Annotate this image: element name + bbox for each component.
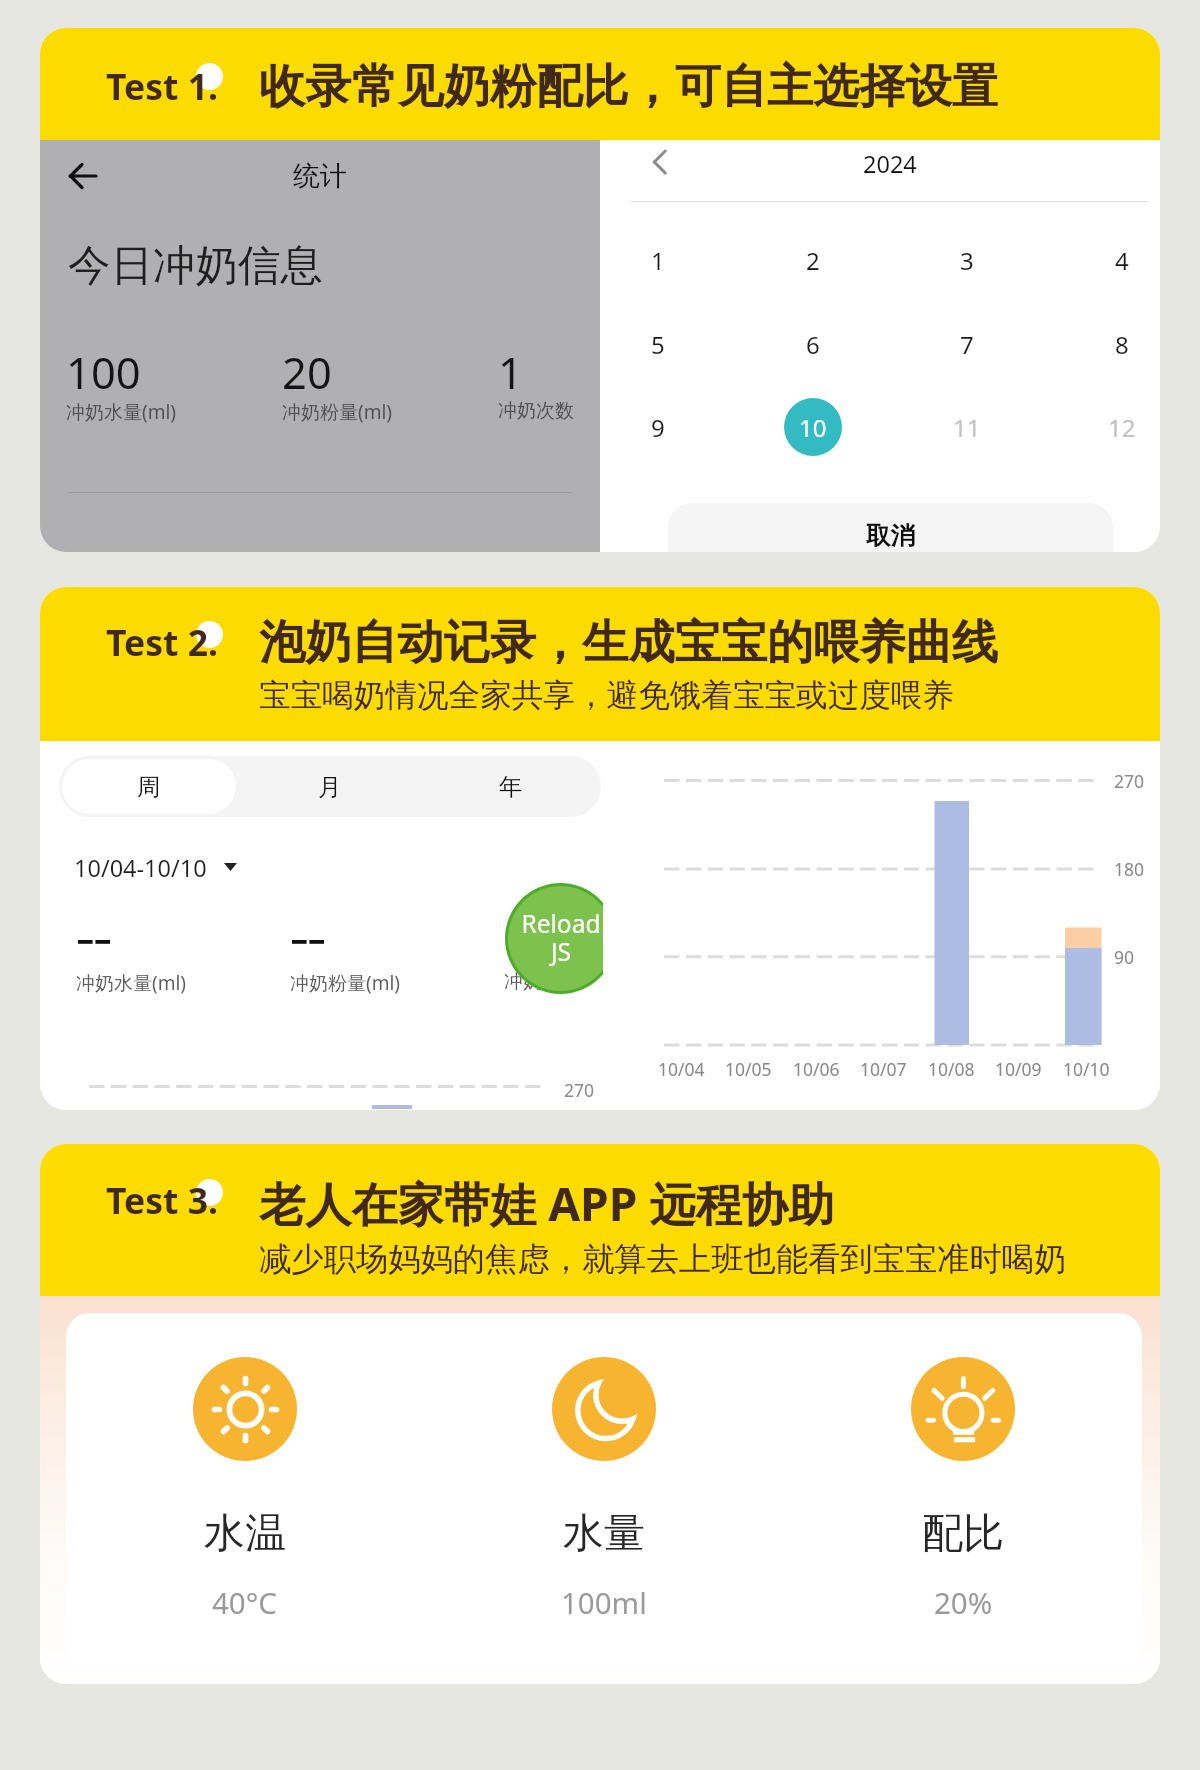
button[interactable]: 5 xyxy=(629,315,687,373)
staticText: 100 xyxy=(66,342,141,401)
staticText: 3 xyxy=(960,244,974,277)
staticText: 270 xyxy=(1114,769,1145,793)
staticText: 10/04-10/10 xyxy=(74,852,207,884)
button[interactable]: 配比 xyxy=(784,1313,1142,1666)
staticText: 冲奶次数 xyxy=(504,970,580,994)
staticText: 270 xyxy=(564,1078,595,1102)
staticText: 10/06 xyxy=(793,1057,840,1081)
staticText: 宝宝喝奶情况全家共享，避免饿着宝宝或过度喂养 xyxy=(259,676,955,716)
button[interactable]: 水量 xyxy=(425,1313,783,1666)
button[interactable]: 年 xyxy=(423,759,598,814)
staticText: 水量 xyxy=(563,1508,645,1560)
staticText: 5 xyxy=(651,328,665,361)
staticText: 100ml xyxy=(561,1582,647,1622)
staticText: 今日冲奶信息 xyxy=(68,239,323,293)
staticText: 40°C xyxy=(212,1582,278,1622)
button[interactable]: 1 xyxy=(629,231,687,289)
button[interactable]: 8 xyxy=(1093,315,1151,373)
staticText: 减少职场妈妈的焦虑，就算去上班也能看到宝宝准时喝奶 xyxy=(259,1239,1067,1280)
staticText: 统计 xyxy=(293,159,347,193)
staticText: 90 xyxy=(1114,945,1135,969)
button[interactable]: 10 xyxy=(784,398,842,456)
staticText: 7 xyxy=(960,328,974,361)
staticText: 泡奶自动记录，生成宝宝的喂养曲线 xyxy=(259,614,998,672)
staticText: 取消 xyxy=(866,520,915,551)
button[interactable]: 9 xyxy=(629,398,687,456)
staticText: 10/07 xyxy=(860,1057,907,1081)
button[interactable]: 月 xyxy=(242,759,417,814)
button[interactable]: Previous year xyxy=(628,132,688,192)
staticText: Test 1. xyxy=(106,62,218,110)
staticText: 6 xyxy=(806,328,820,361)
staticText: 10/05 xyxy=(725,1057,772,1081)
staticText: 2 xyxy=(806,244,820,277)
staticText: 10 xyxy=(799,411,827,444)
button[interactable]: 12 xyxy=(1093,398,1151,456)
staticText: 1 xyxy=(498,342,523,401)
staticText: 冲奶水量(ml) xyxy=(76,970,187,996)
staticText: 水温 xyxy=(204,1508,286,1560)
staticText: 10/04 xyxy=(658,1057,705,1081)
staticText: 9 xyxy=(651,411,665,444)
staticText: 冲奶粉量(ml) xyxy=(282,399,393,425)
staticText: 冲奶次数 xyxy=(498,399,574,423)
button[interactable]: 10/04-10/10 xyxy=(74,852,237,884)
staticText: 4 xyxy=(1115,244,1129,277)
button[interactable]: 6 xyxy=(784,315,842,373)
staticText: 月 xyxy=(318,772,342,802)
button[interactable]: 7 xyxy=(938,315,996,373)
staticText: 12 xyxy=(1108,411,1136,444)
button[interactable]: 3 xyxy=(938,231,996,289)
button[interactable]: 水温 xyxy=(66,1313,424,1666)
staticText: 10/08 xyxy=(928,1057,975,1081)
staticText: 年 xyxy=(499,772,523,802)
staticText: 10/09 xyxy=(995,1057,1042,1081)
staticText: 11 xyxy=(953,411,981,444)
button[interactable]: 取消 xyxy=(668,503,1113,552)
button[interactable]: 2 xyxy=(784,231,842,289)
button[interactable]: Back xyxy=(53,146,113,206)
staticText: 8 xyxy=(1115,328,1129,361)
button[interactable]: Reload JS xyxy=(508,886,603,991)
staticText: 20 xyxy=(282,342,332,401)
staticText: Test 2. xyxy=(106,618,218,666)
staticText: 周 xyxy=(137,772,161,802)
staticText: 1 xyxy=(651,244,665,277)
staticText: 2024 xyxy=(863,148,917,180)
staticText: 配比 xyxy=(922,1508,1004,1560)
staticText: 收录常见奶粉配比，可自主选择设置 xyxy=(259,58,998,116)
staticText: 10/10 xyxy=(1063,1057,1110,1081)
button[interactable]: 周 xyxy=(62,759,236,814)
staticText: 180 xyxy=(1114,857,1145,881)
staticText: 20% xyxy=(934,1582,993,1622)
staticText: 老人在家带娃 APP 远程协助 xyxy=(259,1172,835,1235)
button[interactable]: 11 xyxy=(938,398,996,456)
staticText: 冲奶水量(ml) xyxy=(66,399,177,425)
staticText: Test 3. xyxy=(106,1176,218,1224)
staticText: Reload JS xyxy=(521,907,601,968)
staticText: 冲奶粉量(ml) xyxy=(290,970,401,996)
button[interactable]: 4 xyxy=(1093,231,1151,289)
